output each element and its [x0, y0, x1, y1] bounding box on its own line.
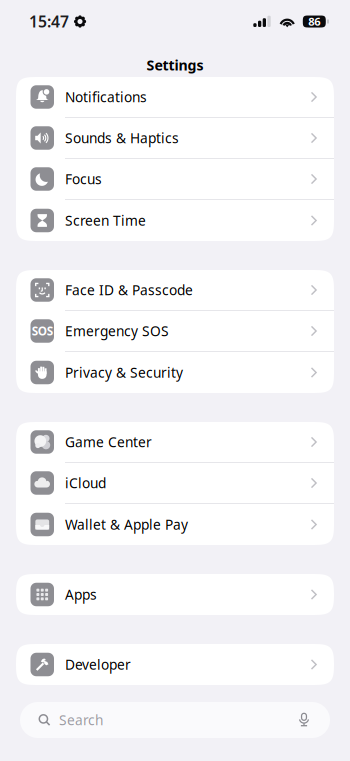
staticText: Notifications	[65, 88, 147, 106]
button[interactable]: Search	[0, 702, 350, 738]
button[interactable]: Wallet & Apple Pay	[16, 504, 334, 545]
staticText: Screen Time	[65, 211, 146, 230]
button[interactable]: Sounds & Haptics	[16, 118, 334, 159]
staticText: Privacy & Security	[65, 363, 183, 382]
staticText: Settings	[146, 55, 203, 75]
staticText: 15:47	[29, 11, 69, 32]
staticText: Developer	[65, 655, 131, 674]
button[interactable]: iCloud	[16, 463, 334, 504]
staticText: Face ID & Passcode	[65, 281, 193, 299]
button[interactable]: Apps	[16, 574, 334, 615]
button[interactable]: SOS	[16, 311, 334, 352]
staticText: Emergency SOS	[65, 322, 169, 340]
button[interactable]: Game Center	[16, 422, 334, 463]
staticText: Game Center	[65, 433, 152, 451]
button[interactable]: Notifications	[16, 77, 334, 118]
staticText: Sounds & Haptics	[65, 129, 179, 147]
staticText: Search	[59, 711, 103, 729]
staticText: SOS	[32, 323, 53, 339]
staticText: Focus	[65, 170, 102, 188]
button[interactable]: Focus	[16, 159, 334, 200]
staticText: Apps	[65, 585, 97, 604]
button[interactable]: Face ID & Passcode	[16, 270, 334, 311]
staticText: iCloud	[65, 474, 106, 492]
staticText: Wallet & Apple Pay	[65, 515, 188, 534]
button[interactable]: Developer	[16, 644, 334, 685]
button[interactable]: Screen Time	[16, 200, 334, 241]
button[interactable]: Privacy & Security	[16, 352, 334, 393]
staticText: 86	[308, 14, 320, 29]
